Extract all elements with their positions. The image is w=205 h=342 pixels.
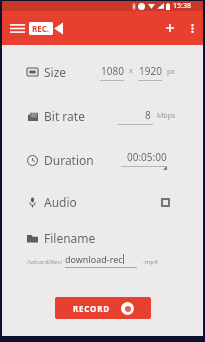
- staticText: /sdcard/Rec/: [27, 258, 63, 266]
- staticText: 00:05:00: [127, 150, 167, 164]
- button[interactable]: More options: [182, 18, 202, 38]
- button[interactable]: Add: [160, 18, 180, 38]
- button[interactable]: Audio: [2, 181, 203, 223]
- staticText: Filename: [44, 230, 96, 246]
- button[interactable]: Size: [2, 50, 203, 94]
- staticText: Bit rate: [44, 108, 85, 124]
- staticText: Audio: [44, 194, 77, 210]
- staticText: REC.: [32, 23, 50, 34]
- staticText: Mbps: [157, 111, 176, 121]
- button[interactable]: RECORD: [55, 297, 151, 319]
- button[interactable]: Bit rate: [2, 94, 203, 138]
- button[interactable]: Filename: [27, 230, 181, 246]
- staticText: download-rec: [65, 253, 123, 265]
- staticText: 15:38: [173, 1, 191, 11]
- staticText: .mp4: [143, 258, 158, 266]
- staticText: Size: [44, 64, 67, 80]
- button[interactable]: Open navigation drawer: [7, 18, 28, 38]
- staticText: 1920: [139, 64, 162, 78]
- staticText: x: [129, 66, 133, 76]
- staticText: px: [167, 67, 175, 77]
- staticText: 8: [145, 108, 151, 122]
- button[interactable]: Duration: [2, 138, 203, 181]
- staticText: 1080: [101, 64, 124, 78]
- staticText: RECORD: [73, 303, 110, 314]
- staticText: Duration: [44, 152, 94, 168]
